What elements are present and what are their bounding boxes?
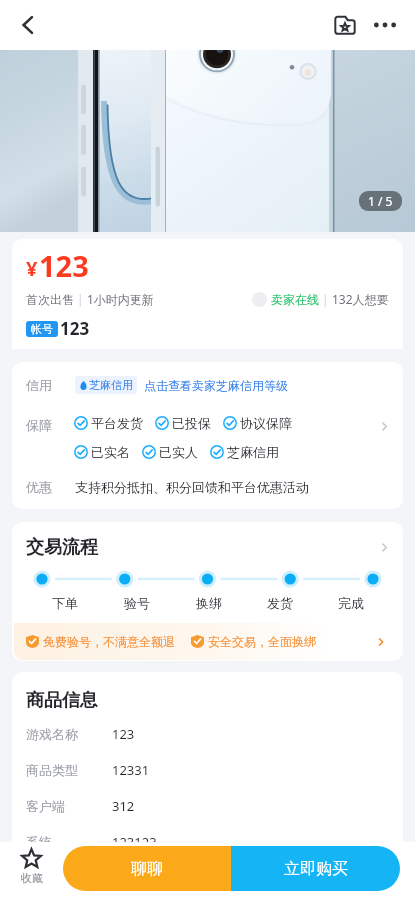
button[interactable]: More options — [369, 9, 401, 41]
button[interactable]: Back — [10, 7, 46, 43]
staticText: 123123 — [112, 833, 157, 851]
staticText: 1 / 5 — [368, 193, 393, 209]
staticText: 聊聊 — [131, 859, 163, 879]
button[interactable]: 聊聊 — [63, 846, 231, 891]
staticText: 12331 — [112, 761, 150, 779]
staticText: 收藏 — [21, 871, 43, 885]
staticText: 已实人 — [159, 444, 198, 460]
staticText: 132人想要 — [332, 291, 389, 307]
staticText: 客户端 — [26, 798, 65, 814]
staticText: 商品类型 — [26, 762, 78, 778]
staticText: 点击查看卖家芝麻信用等级 — [144, 378, 288, 393]
staticText: 信用 — [26, 377, 52, 393]
button[interactable]: 收藏 — [0, 842, 63, 897]
staticText: 安全交易，全面换绑 — [208, 634, 316, 649]
staticText: 平台发货 — [91, 415, 143, 431]
staticText: 免费验号，不满意全额退 — [43, 634, 175, 649]
button[interactable]: 免费验号，不满意全额退 — [14, 623, 401, 660]
staticText: 已投保 — [172, 415, 211, 431]
staticText: 123 — [112, 725, 135, 743]
staticText: 芝麻信用 — [227, 444, 279, 460]
staticText: 优惠 — [26, 479, 52, 495]
staticText: 商品信息 — [26, 689, 98, 712]
staticText: 卖家在线 — [271, 292, 319, 307]
staticText: 123 — [60, 317, 90, 340]
staticText: | — [74, 291, 87, 307]
button[interactable]: 1 / 5 — [368, 193, 393, 209]
staticText: 已实名 — [91, 444, 130, 460]
staticText: 支持积分抵扣、积分回馈和平台优惠活动 — [75, 479, 309, 495]
staticText: 首次出售 — [26, 292, 74, 307]
staticText: 立即购买 — [284, 859, 348, 879]
staticText: | — [319, 291, 332, 307]
staticText: 游戏名称 — [26, 726, 78, 742]
staticText: 完成 — [338, 595, 364, 611]
staticText: 123 — [39, 246, 89, 285]
staticText: 交易流程 — [26, 536, 98, 559]
staticText: 1小时内更新 — [87, 291, 154, 307]
staticText: 换绑 — [196, 595, 222, 611]
staticText: 协议保障 — [240, 415, 292, 431]
button[interactable]: Favorites — [329, 9, 361, 41]
staticText: 帐号 — [31, 322, 53, 336]
staticText: 保障 — [26, 417, 52, 433]
staticText: 312 — [112, 797, 135, 815]
staticText: 下单 — [52, 595, 78, 611]
staticText: 系统 — [26, 834, 52, 850]
button[interactable]: 立即购买 — [231, 846, 400, 891]
staticText: 发货 — [267, 595, 293, 611]
staticText: 验号 — [124, 595, 150, 611]
staticText: 芝麻信用 — [89, 378, 133, 392]
staticText: ¥ — [26, 255, 38, 282]
